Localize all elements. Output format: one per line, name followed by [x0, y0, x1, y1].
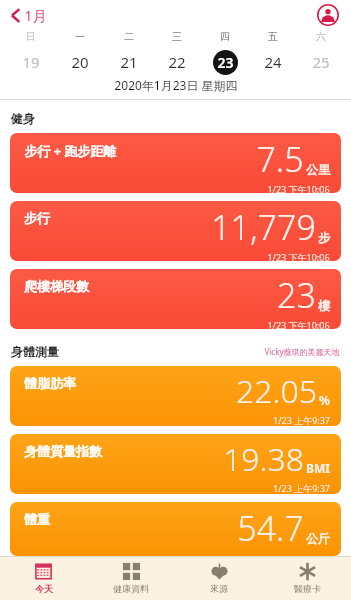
button[interactable]: 25 [297, 49, 345, 75]
staticText: 22 [168, 52, 186, 72]
button[interactable]: 1月 [8, 4, 49, 27]
staticText: 1/23 上午9:37 [273, 414, 330, 426]
staticText: 24 [264, 52, 282, 72]
button[interactable]: 體脂肪率 [10, 366, 341, 426]
button[interactable]: 20 [55, 49, 104, 75]
staticText: 11,779 [211, 204, 316, 250]
button[interactable]: 來源 [175, 556, 263, 600]
staticText: 23 [277, 272, 316, 318]
staticText: 六 [316, 30, 326, 43]
staticText: 五 [268, 30, 278, 43]
staticText: Vicky薇琪的美麗天地 [264, 346, 340, 357]
staticText: 樓 [318, 298, 330, 313]
staticText: 1/23 下午10:06 [267, 251, 330, 261]
staticText: 體重 [24, 511, 50, 527]
staticText: 公里 [306, 162, 330, 177]
button[interactable]: 今天 [0, 556, 87, 600]
staticText: 健身 [11, 111, 35, 126]
staticText: 21 [120, 52, 138, 72]
staticText: 7.5 [256, 136, 304, 182]
staticText: 20 [71, 52, 89, 72]
button[interactable]: 步行 [10, 201, 341, 261]
staticText: 健康資料 [113, 583, 149, 594]
staticText: 爬樓梯段數 [24, 278, 89, 294]
staticText: 54.7 [237, 505, 304, 551]
staticText: 今天 [35, 583, 53, 594]
staticText: 步行 [24, 210, 50, 226]
button[interactable]: Profile [315, 2, 341, 28]
staticText: 1/23 下午10:06 [267, 183, 330, 193]
staticText: 1月 [24, 6, 47, 25]
staticText: 公斤 [306, 531, 330, 546]
staticText: 三 [172, 30, 182, 43]
button[interactable]: 醫療卡 [263, 556, 351, 600]
button[interactable]: 23 [201, 49, 249, 75]
staticText: 2020年1月23日 星期四 [114, 77, 238, 93]
staticText: 19 [22, 52, 40, 72]
staticText: 來源 [210, 583, 228, 594]
button[interactable]: 身體質量指數 [10, 434, 341, 494]
staticText: 醫療卡 [294, 583, 321, 594]
staticText: 身體質量指數 [24, 443, 102, 459]
staticText: 一 [75, 30, 85, 43]
staticText: 體脂肪率 [24, 375, 76, 391]
staticText: 四 [220, 30, 230, 43]
staticText: BMI [306, 460, 330, 476]
staticText: 二 [124, 30, 134, 43]
button[interactable]: 體重 [10, 502, 341, 556]
button[interactable]: 21 [104, 49, 153, 75]
staticText: 25 [312, 52, 330, 72]
button[interactable]: 24 [249, 49, 297, 75]
staticText: 1/23 上午9:37 [273, 482, 330, 494]
staticText: 日 [26, 30, 36, 43]
staticText: 23 [217, 53, 234, 72]
staticText: 步 [318, 230, 330, 245]
button[interactable]: 爬樓梯段數 [10, 269, 341, 329]
button[interactable]: 22 [153, 49, 201, 75]
button[interactable]: 19 [6, 49, 55, 75]
staticText: 19.38 [223, 437, 304, 481]
button[interactable]: 健康資料 [87, 556, 175, 600]
staticText: 步行 + 跑步距離 [24, 142, 117, 160]
staticText: 身體測量 [11, 344, 59, 359]
button[interactable]: 步行 + 跑步距離 [10, 133, 341, 193]
staticText: 1/23 下午10:06 [267, 319, 330, 329]
staticText: 22.05 [236, 369, 317, 413]
staticText: % [319, 392, 330, 408]
